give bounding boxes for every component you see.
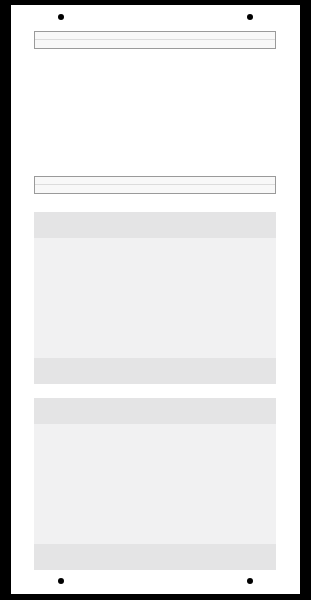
- button[interactable]: Forward: [247, 578, 253, 584]
- button[interactable]: Section field: [35, 177, 275, 193]
- button[interactable]: Back: [58, 578, 64, 584]
- button[interactable]: First card: [34, 212, 276, 384]
- button[interactable]: Previous: [58, 14, 64, 20]
- button[interactable]: Second card: [34, 398, 276, 570]
- button[interactable]: Title field: [35, 32, 275, 48]
- button[interactable]: Next: [247, 14, 253, 20]
